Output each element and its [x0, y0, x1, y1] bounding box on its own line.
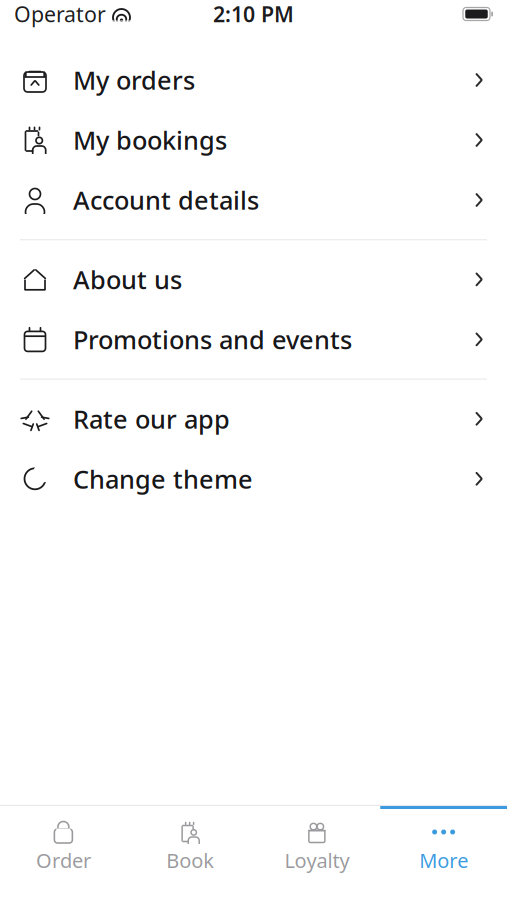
button[interactable]: My bookings	[0, 110, 507, 170]
staticText: Loyalty	[284, 847, 349, 874]
staticText: Operator	[14, 0, 106, 28]
button[interactable]: Change theme	[0, 449, 507, 509]
button[interactable]: Account details	[0, 170, 507, 230]
button[interactable]: Promotions and events	[0, 309, 507, 369]
button[interactable]: Loyalty	[253, 806, 380, 900]
button[interactable]: My orders	[0, 50, 507, 110]
staticText: Change theme	[73, 462, 253, 496]
staticText: Promotions and events	[73, 323, 352, 356]
button[interactable]: Book	[127, 806, 254, 900]
staticText: Book	[166, 847, 214, 874]
staticText: Rate our app	[73, 402, 230, 436]
staticText: 2:10 PM	[213, 0, 294, 28]
button[interactable]: Order	[0, 806, 127, 900]
staticText: Order	[36, 847, 91, 874]
button[interactable]: Rate our app	[0, 389, 507, 449]
staticText: More	[419, 847, 468, 874]
button[interactable]: More	[380, 806, 507, 900]
staticText: My bookings	[73, 123, 227, 157]
staticText: About us	[73, 263, 182, 296]
button[interactable]: About us	[0, 249, 507, 309]
staticText: My orders	[73, 63, 195, 97]
staticText: Account details	[73, 183, 259, 217]
